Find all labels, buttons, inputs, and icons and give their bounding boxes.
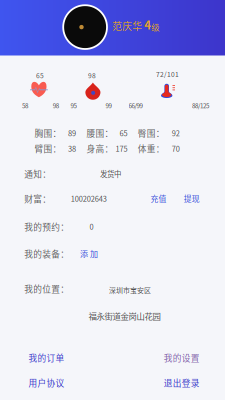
staticText: 级: [151, 21, 159, 33]
button[interactable]: 用户协议: [29, 376, 65, 389]
staticText: 88/125: [192, 101, 209, 110]
staticText: 100202643: [71, 193, 107, 204]
staticText: 我的装备：: [24, 247, 69, 260]
staticText: 退出登录: [164, 376, 200, 389]
staticText: 89: [68, 128, 76, 138]
staticText: 臀围：: [138, 127, 165, 139]
staticText: 深圳市宝安区: [109, 285, 151, 295]
staticText: 4: [144, 16, 151, 33]
staticText: 范庆华: [112, 19, 142, 33]
staticText: 胸围：: [34, 127, 61, 139]
staticText: 用户协议: [29, 376, 65, 389]
staticText: 我的预约：: [24, 220, 69, 233]
staticText: 98: [88, 71, 96, 80]
staticText: 我的订单: [29, 351, 65, 364]
staticText: 财富：: [24, 192, 51, 205]
staticText: 臂围：: [34, 142, 61, 155]
staticText: 38: [68, 143, 76, 154]
staticText: 充值: [151, 193, 167, 204]
staticText: 98: [53, 101, 59, 110]
staticText: 福永街道金岗山花园: [88, 310, 160, 322]
button[interactable]: 提现: [184, 193, 200, 204]
staticText: 腰围：: [86, 127, 113, 139]
staticText: 65: [119, 128, 127, 138]
staticText: 提现: [184, 193, 200, 204]
staticText: 体重：: [138, 142, 165, 155]
staticText: 我的位置：: [24, 282, 69, 295]
staticText: 66/99: [128, 101, 142, 110]
staticText: 72/101: [156, 69, 179, 79]
staticText: 身高：: [86, 142, 113, 155]
button[interactable]: 用户头像: [62, 4, 108, 50]
staticText: 175: [115, 143, 127, 154]
button[interactable]: 退出登录: [164, 376, 200, 389]
staticText: 添 加: [80, 248, 98, 259]
button[interactable]: 我的设置: [164, 351, 200, 364]
staticText: 95: [70, 101, 76, 110]
staticText: 0: [89, 221, 93, 232]
button[interactable]: 添 加: [80, 248, 98, 259]
staticText: 99: [105, 101, 111, 110]
staticText: 65: [36, 71, 44, 80]
staticText: 通知：: [24, 167, 51, 180]
button[interactable]: 我的订单: [29, 351, 65, 364]
button[interactable]: 充值: [151, 193, 167, 204]
staticText: 我的设置: [164, 351, 200, 364]
staticText: 70: [172, 143, 180, 154]
staticText: 发货中: [100, 168, 121, 179]
staticText: 58: [22, 101, 28, 110]
staticText: 92: [172, 128, 180, 138]
